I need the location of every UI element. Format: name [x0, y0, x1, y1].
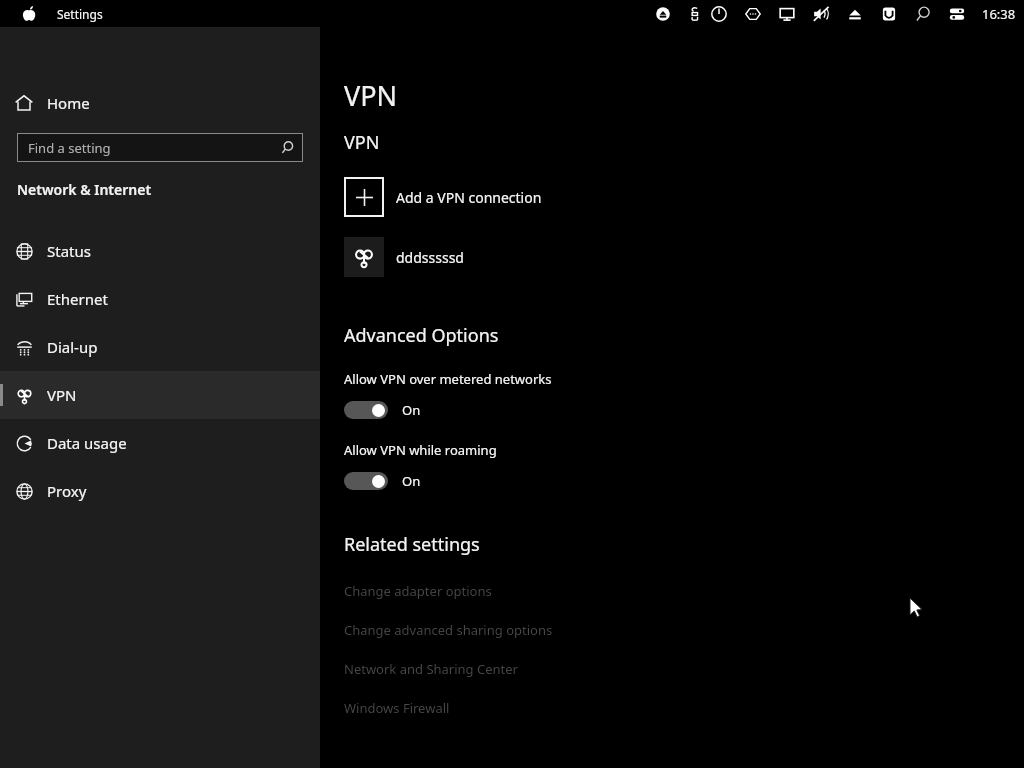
button[interactable]: Data usage [0, 419, 320, 467]
staticText: Allow VPN over metered networks [344, 370, 552, 388]
staticText: 16:38 [982, 5, 1016, 23]
button[interactable]: Action center [948, 5, 966, 23]
button[interactable]: Volume muted [812, 5, 830, 23]
button[interactable]: Network and Sharing Center [344, 649, 518, 688]
button[interactable]: Add a VPN connection [344, 177, 542, 217]
staticText: Related settings [344, 532, 480, 557]
button[interactable]: CPU monitor [686, 5, 704, 23]
button[interactable]: Change advanced sharing options [344, 610, 553, 649]
staticText: Find a setting [28, 139, 111, 157]
button[interactable]: Find a setting [17, 133, 303, 162]
staticText: VPN [344, 77, 398, 114]
button[interactable]: On [344, 470, 421, 492]
staticText: Settings [57, 6, 103, 22]
button[interactable]: Home [0, 83, 320, 123]
button[interactable]: System clock [710, 5, 728, 23]
button[interactable]: Eject media [654, 5, 672, 23]
button[interactable]: dddsssssd [344, 237, 464, 277]
staticText: Proxy [47, 481, 87, 501]
staticText: Network and Sharing Center [344, 660, 518, 678]
staticText: Dial-up [47, 337, 98, 357]
button[interactable]: Status [0, 227, 320, 275]
staticText: Windows Firewall [344, 699, 450, 717]
button[interactable]: Change adapter options [344, 571, 492, 610]
staticText: Allow VPN while roaming [344, 441, 497, 459]
button[interactable]: Windows Firewall [344, 688, 450, 727]
staticText: Ethernet [47, 289, 108, 309]
staticText: Change adapter options [344, 582, 492, 600]
button[interactable]: Proxy [0, 467, 320, 515]
button[interactable]: U application [880, 5, 898, 23]
staticText: Add a VPN connection [396, 188, 542, 207]
staticText: VPN [344, 130, 380, 155]
button[interactable]: Ethernet [0, 275, 320, 323]
staticText: Home [47, 93, 90, 113]
button[interactable]: Dial-up [0, 323, 320, 371]
staticText: dddsssssd [396, 248, 464, 267]
button[interactable]: Network [744, 5, 762, 23]
staticText: Network & Internet [17, 180, 152, 199]
button[interactable]: On [344, 399, 421, 421]
button[interactable]: Eject [846, 5, 864, 23]
staticText: Change advanced sharing options [344, 621, 553, 639]
staticText: On [402, 401, 421, 419]
staticText: Advanced Options [344, 323, 499, 348]
button[interactable]: Display [778, 5, 796, 23]
button[interactable]: VPN [0, 371, 320, 419]
staticText: On [402, 472, 421, 490]
staticText: Data usage [47, 433, 127, 453]
button[interactable]: Search [914, 5, 932, 23]
staticText: Status [47, 241, 91, 261]
staticText: VPN [47, 385, 77, 405]
